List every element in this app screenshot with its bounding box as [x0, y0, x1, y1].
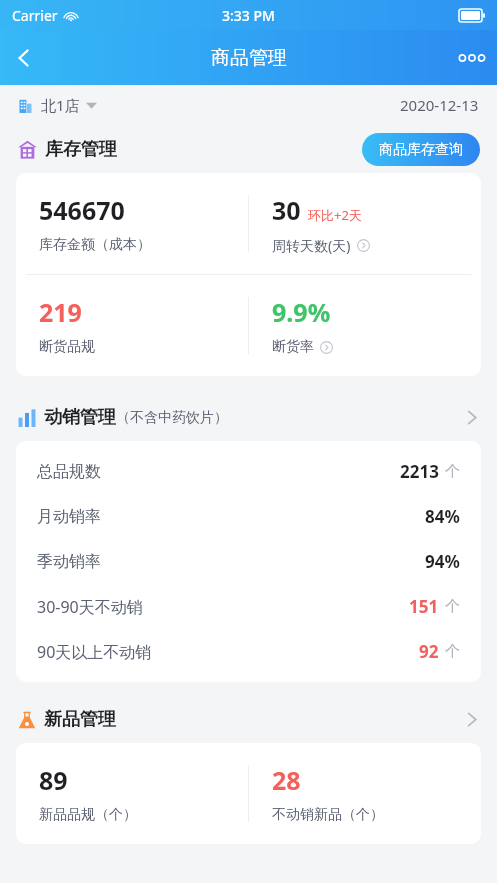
staticText: （不含中药饮片） [116, 409, 228, 427]
staticText: 84% [425, 505, 460, 528]
staticText: 新品管理 [44, 708, 116, 731]
staticText: 2213 [400, 460, 439, 483]
staticText: 商品管理 [211, 46, 287, 70]
button[interactable]: 动销管理 [0, 394, 497, 441]
button[interactable]: 总品规数 [16, 449, 481, 494]
button[interactable]: 89 [16, 743, 248, 844]
staticText: 151 [409, 595, 439, 618]
staticText: 断货品规 [39, 338, 95, 356]
staticText: 新品品规（个） [39, 806, 137, 824]
staticText: 总品规数 [37, 462, 101, 482]
staticText: 90天以上不动销 [37, 641, 152, 663]
staticText: 商品库存查询 [379, 141, 463, 159]
staticText: 89 [39, 763, 68, 797]
staticText: 546670 [39, 193, 125, 227]
button[interactable]: 北1店 [18, 95, 97, 115]
button[interactable]: 新品管理 [0, 696, 497, 743]
button[interactable]: 商品库存查询 [362, 133, 480, 166]
staticText: 动销管理 [44, 406, 116, 429]
staticText: 个 [445, 642, 460, 661]
staticText: 个 [445, 462, 460, 481]
staticText: 3:33 PM [222, 6, 275, 25]
staticText: 季动销率 [37, 552, 101, 572]
staticText: 94% [425, 550, 460, 573]
button[interactable]: More options [447, 33, 497, 83]
button[interactable]: 30-90天不动销 [16, 584, 481, 629]
staticText: 周转天数(天) [272, 236, 351, 255]
staticText: 月动销率 [37, 507, 101, 527]
staticText: 断货率 [272, 338, 314, 356]
staticText: 库存金额（成本） [39, 236, 151, 254]
staticText: 个 [445, 597, 460, 616]
button[interactable]: 季动销率 [16, 539, 481, 584]
button[interactable]: Back [0, 34, 48, 82]
button[interactable]: 30 [249, 173, 481, 274]
button[interactable]: 90天以上不动销 [16, 629, 481, 674]
button[interactable]: 月动销率 [16, 494, 481, 539]
button[interactable]: 28 [249, 743, 481, 844]
button[interactable]: 219 [16, 275, 248, 376]
staticText: 北1店 [41, 95, 80, 115]
staticText: 不动销新品（个） [272, 806, 384, 824]
staticText: 库存管理 [45, 138, 117, 161]
staticText: Carrier [12, 6, 58, 25]
staticText: 92 [419, 640, 439, 663]
staticText: 219 [39, 295, 82, 329]
staticText: 2020-12-13 [400, 95, 479, 115]
staticText: 28 [272, 763, 301, 797]
staticText: 9.9% [272, 295, 331, 329]
staticText: 30 [272, 193, 301, 227]
staticText: 环比+2天 [308, 206, 362, 224]
button[interactable]: 546670 [16, 173, 248, 274]
staticText: 30-90天不动销 [37, 596, 143, 618]
button[interactable]: 9.9% [249, 275, 481, 376]
